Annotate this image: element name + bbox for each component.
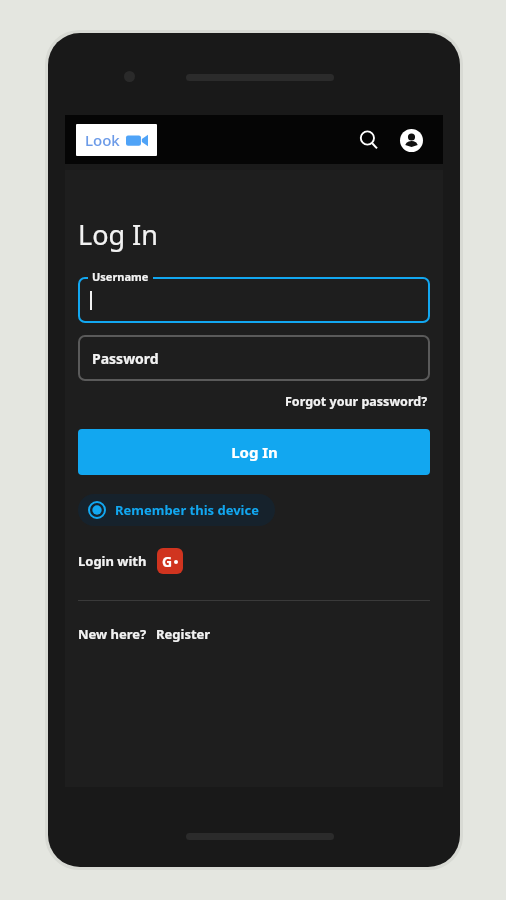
staticText: Forgot your password? [285,393,428,410]
button[interactable]: Remember this device [78,494,275,526]
button[interactable]: Look [76,124,157,156]
button[interactable]: Search [351,122,387,158]
button[interactable] [78,277,430,323]
staticText: G [162,552,173,571]
staticText: Look [85,130,120,150]
button[interactable]: Account [393,122,429,158]
staticText: Login with [78,552,147,570]
staticText: Register [156,625,211,643]
button[interactable]: Forgot your password? [283,390,430,413]
staticText: Log In [78,216,158,253]
button[interactable]: Password [78,335,430,381]
button[interactable]: Register [155,623,212,645]
staticText: Username [92,269,149,284]
button[interactable]: Log In [78,429,430,475]
staticText: Password [92,349,159,368]
button[interactable]: Login with Google Plus [157,548,183,574]
staticText: Log In [231,442,278,462]
staticText: New here? [78,625,147,643]
staticText: Remember this device [115,501,259,519]
